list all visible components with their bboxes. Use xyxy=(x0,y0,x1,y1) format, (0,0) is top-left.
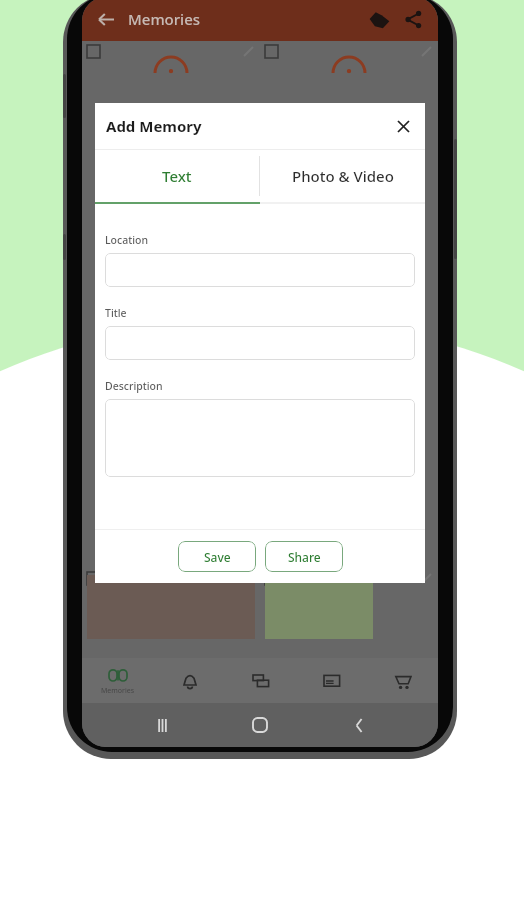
button[interactable]: Text xyxy=(95,150,259,202)
staticText: Description xyxy=(105,379,163,393)
button[interactable]: Recents xyxy=(143,706,181,744)
button[interactable] xyxy=(105,399,415,477)
button[interactable]: Friends xyxy=(362,2,396,36)
button[interactable] xyxy=(105,253,415,287)
button[interactable]: Photo & Video xyxy=(260,150,425,202)
staticText: Photo & Video xyxy=(292,166,394,186)
button[interactable]: Home xyxy=(241,706,279,744)
button[interactable]: Cart xyxy=(367,658,438,703)
staticText: Location xyxy=(105,233,149,247)
staticText: Title xyxy=(105,306,127,320)
staticText: Memories xyxy=(101,686,135,696)
button[interactable] xyxy=(105,326,415,360)
button[interactable]: Save xyxy=(178,541,256,572)
button[interactable]: Notifications xyxy=(154,658,225,703)
button[interactable]: News xyxy=(296,658,367,703)
button[interactable]: Share xyxy=(265,541,343,572)
button[interactable]: Chats xyxy=(225,658,296,703)
staticText: Share xyxy=(288,549,321,565)
button[interactable]: Share xyxy=(396,2,430,36)
button[interactable]: Back xyxy=(90,3,122,35)
button[interactable]: Close xyxy=(387,110,419,142)
staticText: Add Memory xyxy=(106,116,202,136)
button[interactable]: Memories xyxy=(82,658,154,703)
staticText: Memories xyxy=(128,9,201,29)
button[interactable]: Back xyxy=(340,706,378,744)
staticText: Text xyxy=(162,166,192,186)
staticText: Save xyxy=(204,549,231,565)
